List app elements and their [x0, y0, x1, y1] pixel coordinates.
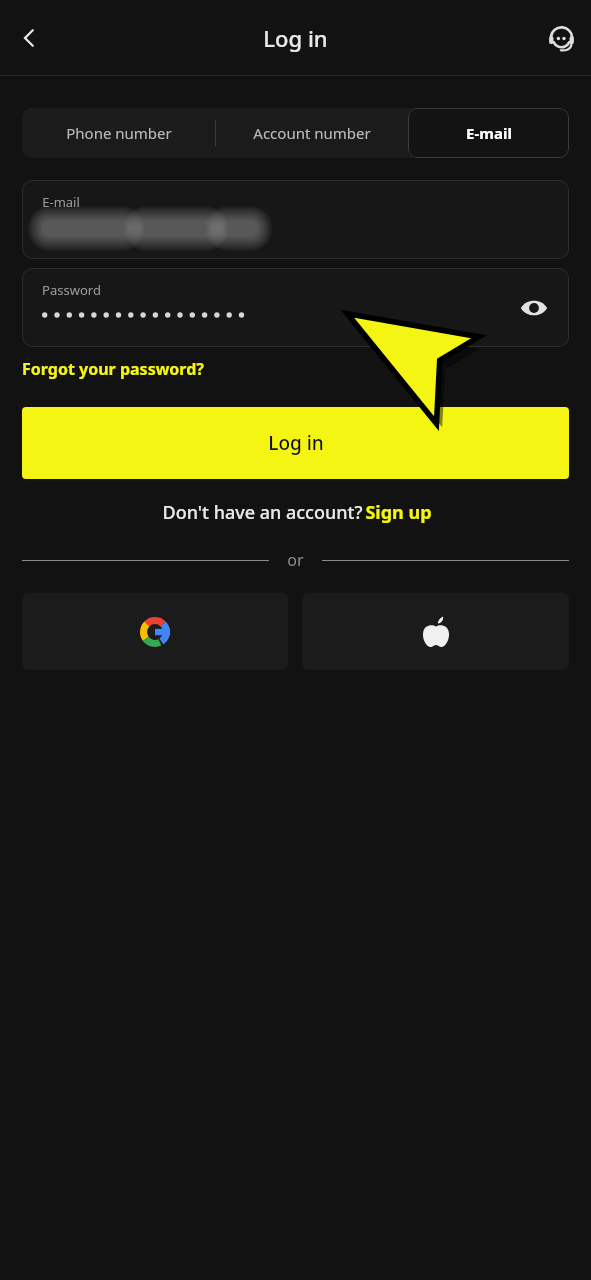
- staticText: E-mail: [42, 193, 80, 211]
- staticText: or: [287, 549, 304, 571]
- button[interactable]: Phone number: [22, 108, 215, 158]
- button[interactable]: Password: [22, 268, 569, 347]
- staticText: Password: [42, 281, 101, 299]
- button[interactable]: E-mail: [22, 180, 569, 259]
- staticText: Log in: [268, 430, 324, 456]
- button[interactable]: Customer support: [537, 14, 585, 62]
- button[interactable]: E-mail: [408, 108, 569, 158]
- button[interactable]: Show password: [511, 285, 557, 331]
- staticText: Log in: [263, 23, 328, 53]
- button[interactable]: Log in: [22, 407, 569, 479]
- button[interactable]: Back: [5, 14, 53, 62]
- staticText: Sign up: [365, 500, 432, 525]
- staticText: Phone number: [66, 123, 172, 143]
- staticText: Forgot your password?: [22, 358, 204, 380]
- button[interactable]: Sign in with Google: [22, 593, 288, 670]
- button[interactable]: Sign up: [365, 500, 432, 525]
- button[interactable]: Account number: [216, 108, 408, 158]
- staticText: Account number: [253, 123, 371, 143]
- staticText: E-mail: [466, 123, 512, 143]
- staticText: Don't have an account?: [160, 500, 365, 525]
- button[interactable]: Sign in with Apple: [302, 593, 569, 670]
- button[interactable]: Forgot your password?: [22, 358, 204, 380]
